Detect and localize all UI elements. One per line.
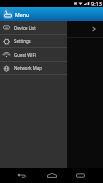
button[interactable]: Network Map	[0, 62, 67, 74]
button[interactable]: Open navigation drawer	[3, 9, 13, 19]
staticText: Network Map	[14, 65, 42, 71]
staticText: Menu	[15, 11, 30, 18]
button[interactable]: Settings	[0, 35, 67, 47]
button[interactable]: Recent apps	[68, 168, 93, 183]
button[interactable]: Device List	[0, 21, 67, 34]
button[interactable]: Home	[39, 168, 64, 183]
button[interactable]: Guest WiFi	[0, 48, 67, 61]
staticText: 9:13	[91, 0, 102, 7]
button[interactable]: Back	[9, 168, 34, 183]
staticText: Settings	[14, 38, 31, 44]
staticText: Device List	[14, 25, 36, 31]
staticText: Guest WiFi	[14, 52, 36, 58]
